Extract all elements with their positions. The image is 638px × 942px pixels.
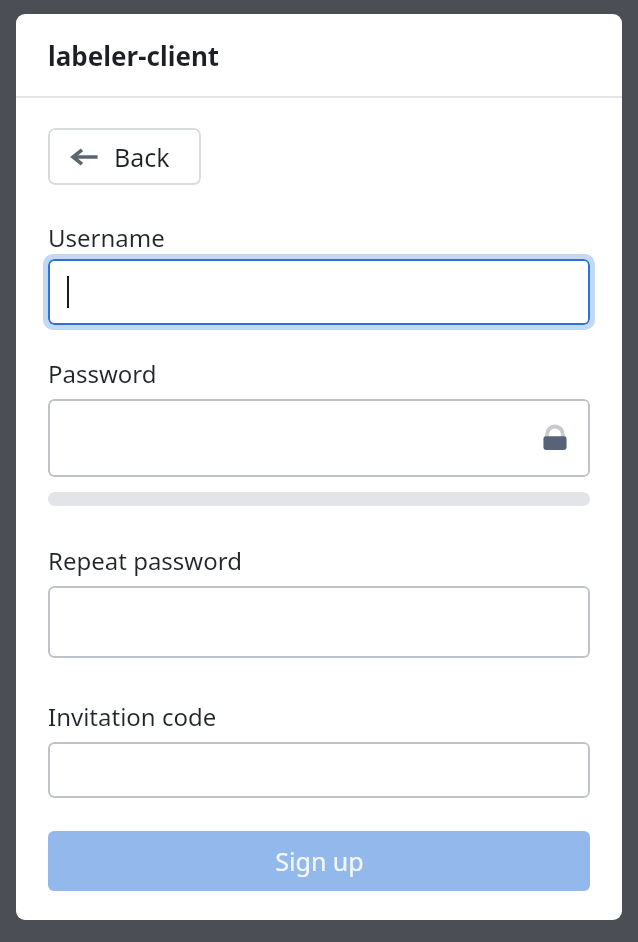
button[interactable] bbox=[48, 259, 590, 325]
button[interactable] bbox=[48, 742, 590, 798]
staticText: labeler-client bbox=[48, 38, 220, 73]
button[interactable] bbox=[48, 586, 590, 658]
other: Password hidden bbox=[538, 421, 572, 455]
button[interactable]: Sign up bbox=[48, 831, 590, 891]
button[interactable]: Password hidden bbox=[48, 399, 590, 477]
staticText: Password bbox=[48, 357, 157, 390]
staticText: Repeat password bbox=[48, 544, 242, 577]
staticText: Username bbox=[48, 221, 165, 254]
staticText: Invitation code bbox=[48, 700, 217, 733]
staticText: Sign up bbox=[275, 844, 364, 878]
button[interactable]: Back bbox=[48, 128, 201, 185]
staticText: Back bbox=[114, 140, 170, 174]
